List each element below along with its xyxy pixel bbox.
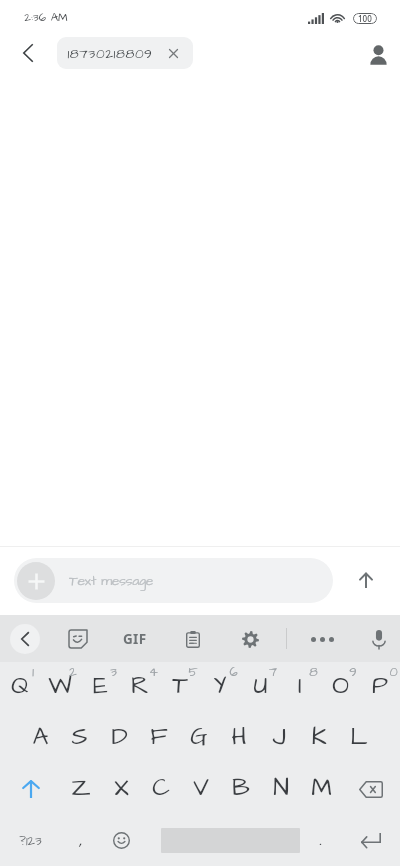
button[interactable]: Backspace	[341, 764, 400, 815]
staticText: 3	[110, 663, 117, 681]
button[interactable]: I	[280, 662, 320, 713]
button[interactable]: Clipboard	[176, 622, 210, 656]
staticText: K	[311, 719, 327, 754]
button[interactable]: L	[339, 713, 379, 764]
button[interactable]: C	[141, 764, 181, 815]
button[interactable]: N	[261, 764, 301, 815]
staticText: L	[350, 719, 368, 754]
staticText: ,	[79, 826, 83, 852]
staticText: S	[71, 719, 88, 754]
staticText: U	[253, 668, 268, 703]
staticText: T	[172, 668, 188, 703]
button[interactable]: F	[139, 713, 179, 764]
staticText: J	[272, 719, 286, 754]
button[interactable]: Enter	[341, 815, 400, 866]
staticText: R	[131, 668, 149, 703]
staticText: E	[93, 668, 108, 703]
button[interactable]: J	[259, 713, 299, 764]
button[interactable]: Y	[200, 662, 240, 713]
staticText: M	[311, 770, 332, 805]
staticText: 9	[349, 663, 357, 681]
staticText: ?123	[19, 832, 42, 850]
button[interactable]: Q	[0, 662, 40, 713]
staticText: O	[332, 668, 349, 703]
staticText: 18730218809	[67, 44, 153, 63]
button[interactable]: Z	[61, 764, 101, 815]
staticText: C	[152, 770, 170, 805]
staticText: D	[111, 719, 128, 754]
staticText: A	[32, 719, 49, 754]
button[interactable]: M	[301, 764, 341, 815]
staticText: V	[193, 770, 209, 805]
staticText: 0	[389, 663, 398, 681]
staticText: 100	[358, 13, 372, 24]
staticText: 6	[229, 663, 238, 681]
button[interactable]: D	[99, 713, 139, 764]
button[interactable]: Text message	[14, 558, 333, 603]
staticText: I	[298, 668, 302, 703]
staticText: Y	[213, 668, 227, 703]
button[interactable]: GIF	[118, 622, 152, 656]
staticText: B	[232, 770, 250, 805]
button[interactable]: Settings	[233, 622, 267, 656]
button[interactable]: More options	[305, 622, 339, 656]
button[interactable]: P	[360, 662, 400, 713]
button[interactable]: 18730218809	[57, 37, 193, 69]
button[interactable]: O	[320, 662, 360, 713]
staticText: 4	[149, 663, 158, 681]
button[interactable]: W	[40, 662, 80, 713]
button[interactable]: Send	[348, 562, 384, 598]
staticText: 8	[309, 663, 318, 681]
button[interactable]: X	[101, 764, 141, 815]
staticText: X	[114, 770, 129, 805]
staticText: 5	[188, 663, 198, 681]
staticText: P	[372, 668, 388, 703]
staticText: N	[273, 770, 289, 805]
button[interactable]: B	[221, 764, 261, 815]
staticText: 2	[69, 663, 77, 681]
button[interactable]: T	[160, 662, 200, 713]
staticText: Z	[71, 770, 91, 805]
staticText: W	[48, 668, 72, 703]
staticText: .	[319, 826, 322, 852]
staticText: Text message	[69, 571, 153, 590]
staticText: F	[150, 719, 168, 754]
button[interactable]: Back	[10, 37, 46, 73]
button[interactable]: Emoji	[101, 815, 141, 866]
button[interactable]: .	[300, 815, 341, 866]
button[interactable]: G	[179, 713, 219, 764]
staticText: H	[231, 719, 247, 754]
staticText: GIF	[123, 630, 147, 648]
button[interactable]: Contact details	[361, 38, 395, 72]
button[interactable]: H	[219, 713, 259, 764]
staticText: 2:36 AM	[24, 10, 68, 26]
button[interactable]: S	[60, 713, 99, 764]
button[interactable]: A	[21, 713, 60, 764]
button[interactable]: ,	[61, 815, 101, 866]
button[interactable]: Shift	[0, 764, 61, 815]
button[interactable]: Stickers	[61, 622, 95, 656]
staticText: G	[190, 719, 208, 754]
button[interactable]: V	[181, 764, 221, 815]
button[interactable]: R	[120, 662, 160, 713]
staticText: 1	[32, 663, 34, 681]
button[interactable]: K	[299, 713, 339, 764]
button[interactable]: Close keyboard toolbar	[10, 624, 40, 654]
button[interactable]: E	[80, 662, 120, 713]
button[interactable]: U	[240, 662, 280, 713]
staticText: Q	[11, 668, 29, 703]
button[interactable]: ?123	[0, 815, 61, 866]
staticText: 7	[269, 663, 277, 681]
button[interactable]: Voice input	[362, 622, 396, 656]
